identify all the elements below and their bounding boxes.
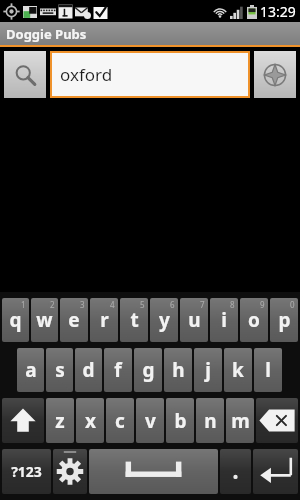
staticText: v (145, 408, 156, 434)
button[interactable]: Input settings (53, 449, 87, 494)
button[interactable]: e (60, 298, 88, 342)
button[interactable]: q (2, 298, 29, 342)
button[interactable]: s (46, 348, 73, 392)
button[interactable]: oxford (52, 53, 248, 96)
button[interactable]: Space (89, 449, 218, 494)
staticText: r (100, 307, 109, 333)
button[interactable]: z (46, 398, 74, 443)
button[interactable]: a (17, 348, 44, 392)
staticText: i (221, 307, 227, 333)
staticText: n (204, 408, 217, 434)
staticText: y (159, 307, 170, 333)
button[interactable]: v (136, 398, 164, 443)
button[interactable]: p (270, 298, 298, 342)
staticText: l (265, 357, 271, 383)
staticText: c (115, 408, 125, 434)
button[interactable]: h (164, 348, 192, 392)
button[interactable]: g (134, 348, 162, 392)
staticText: 13:29 (260, 2, 296, 21)
staticText: a (25, 357, 37, 383)
staticText: u (188, 307, 201, 333)
staticText: 5 (140, 299, 145, 310)
staticText: 7 (200, 299, 205, 310)
staticText: ?123 (11, 462, 42, 481)
button[interactable]: w (31, 298, 58, 342)
button[interactable]: x (76, 398, 104, 443)
staticText: 6 (170, 299, 175, 310)
button[interactable]: Shift (2, 398, 44, 443)
staticText: g (142, 357, 155, 383)
button[interactable]: i (210, 298, 238, 342)
button[interactable]: Compass (254, 51, 296, 98)
button[interactable]: Search (4, 51, 46, 98)
staticText: Doggie Pubs (6, 25, 87, 43)
staticText: w (36, 307, 53, 333)
button[interactable]: n (196, 398, 224, 443)
button[interactable]: ?123 (2, 449, 51, 494)
staticText: h (172, 357, 185, 383)
staticText: j (205, 357, 211, 383)
staticText: 4 (110, 299, 115, 310)
button[interactable]: u (180, 298, 208, 342)
staticText: 9 (260, 299, 265, 310)
staticText: 8 (230, 299, 235, 310)
staticText: k (232, 357, 244, 383)
staticText: 3 (80, 299, 85, 310)
staticText: oxford (60, 63, 113, 86)
button[interactable]: b (166, 398, 194, 443)
button[interactable]: c (106, 398, 134, 443)
staticText: b (174, 408, 187, 434)
staticText: s (55, 357, 65, 383)
button[interactable]: j (194, 348, 222, 392)
button[interactable]: Backspace (256, 398, 298, 443)
staticText: p (278, 307, 291, 333)
button[interactable]: y (150, 298, 178, 342)
staticText: z (55, 408, 65, 434)
staticText: 0 (290, 299, 295, 310)
button[interactable]: d (75, 348, 102, 392)
button[interactable]: l (254, 348, 282, 392)
button[interactable]: r (90, 298, 118, 342)
button[interactable]: f (104, 348, 132, 392)
staticText: 1 (21, 299, 26, 310)
staticText: x (85, 408, 96, 434)
button[interactable]: o (240, 298, 268, 342)
staticText: 2 (50, 299, 55, 310)
button[interactable]: k (224, 348, 252, 392)
button[interactable]: m (226, 398, 254, 443)
staticText: t (130, 307, 139, 333)
staticText: d (82, 357, 95, 383)
staticText: o (248, 307, 260, 333)
staticText: f (114, 357, 122, 383)
button[interactable]: Enter (253, 449, 298, 494)
staticText: m (231, 408, 250, 434)
button[interactable]: t (120, 298, 148, 342)
staticText: e (68, 307, 80, 333)
button[interactable]: Period (220, 449, 251, 494)
staticText: q (9, 307, 22, 333)
